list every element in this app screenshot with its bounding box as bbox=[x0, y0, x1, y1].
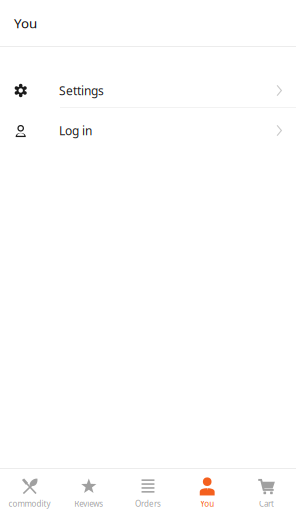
staticText: Cart bbox=[259, 498, 274, 509]
button[interactable]: Cart bbox=[237, 469, 296, 512]
staticText: Reviews bbox=[74, 498, 103, 509]
staticText: You bbox=[200, 498, 214, 509]
button[interactable]: Log in bbox=[0, 108, 296, 153]
staticText: commodity bbox=[9, 498, 51, 509]
staticText: Log in bbox=[59, 122, 92, 138]
staticText: Orders bbox=[135, 498, 161, 509]
staticText: Settings bbox=[59, 82, 104, 98]
button[interactable]: commodity bbox=[0, 469, 59, 512]
button[interactable]: Orders bbox=[118, 469, 178, 512]
button[interactable]: You bbox=[178, 469, 237, 512]
button[interactable]: Settings bbox=[0, 74, 296, 107]
button[interactable]: Reviews bbox=[59, 469, 118, 512]
staticText: You bbox=[14, 14, 37, 32]
